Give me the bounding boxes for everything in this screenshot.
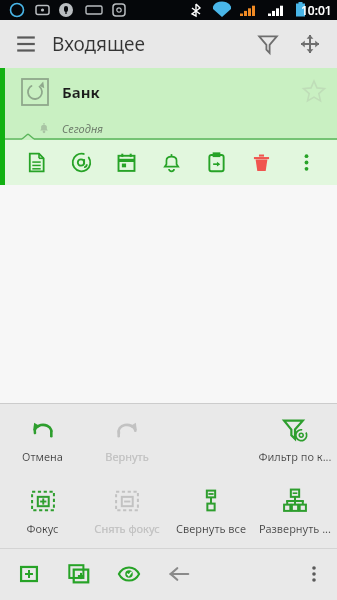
button[interactable]: Вернуть: [85, 404, 169, 476]
staticText: Фокус: [26, 521, 59, 536]
button[interactable]: Back: [154, 549, 204, 599]
button[interactable]: Favorite: [303, 81, 325, 103]
staticText: Снять фокус: [94, 521, 160, 536]
button[interactable]: Mark read: [104, 549, 154, 599]
button[interactable]: Свернуть все: [169, 476, 253, 548]
button[interactable]: Delete: [239, 140, 284, 185]
staticText: Свернуть все: [176, 521, 246, 536]
button[interactable]: Add child: [54, 549, 104, 599]
button[interactable]: Filter: [247, 23, 289, 65]
button[interactable]: Menu: [6, 24, 46, 64]
button[interactable]: Email: [59, 140, 104, 185]
button[interactable]: Фокус: [0, 476, 85, 548]
staticText: Банк: [62, 82, 100, 102]
button[interactable]: Move: [289, 23, 331, 65]
button[interactable]: Note: [14, 140, 59, 185]
button[interactable]: Reminder: [149, 140, 194, 185]
staticText: Отмена: [22, 449, 63, 464]
button[interactable]: Task: [194, 140, 239, 185]
button[interactable]: Развернуть ...: [253, 476, 337, 548]
staticText: 10:01: [301, 2, 332, 18]
staticText: Входящее: [52, 31, 146, 57]
button[interactable]: Calendar: [104, 140, 149, 185]
staticText: Фильтр по к...: [258, 449, 332, 464]
staticText: Развернуть ...: [259, 521, 331, 536]
button[interactable]: Снять фокус: [85, 476, 169, 548]
staticText: Вернуть: [105, 449, 149, 464]
button[interactable]: Отмена: [0, 404, 85, 476]
button[interactable]: Фильтр по к...: [253, 404, 337, 476]
button[interactable]: Add: [4, 549, 54, 599]
button[interactable]: More: [284, 140, 329, 185]
button[interactable]: More options: [291, 551, 337, 597]
staticText: Сегодня: [62, 121, 103, 136]
